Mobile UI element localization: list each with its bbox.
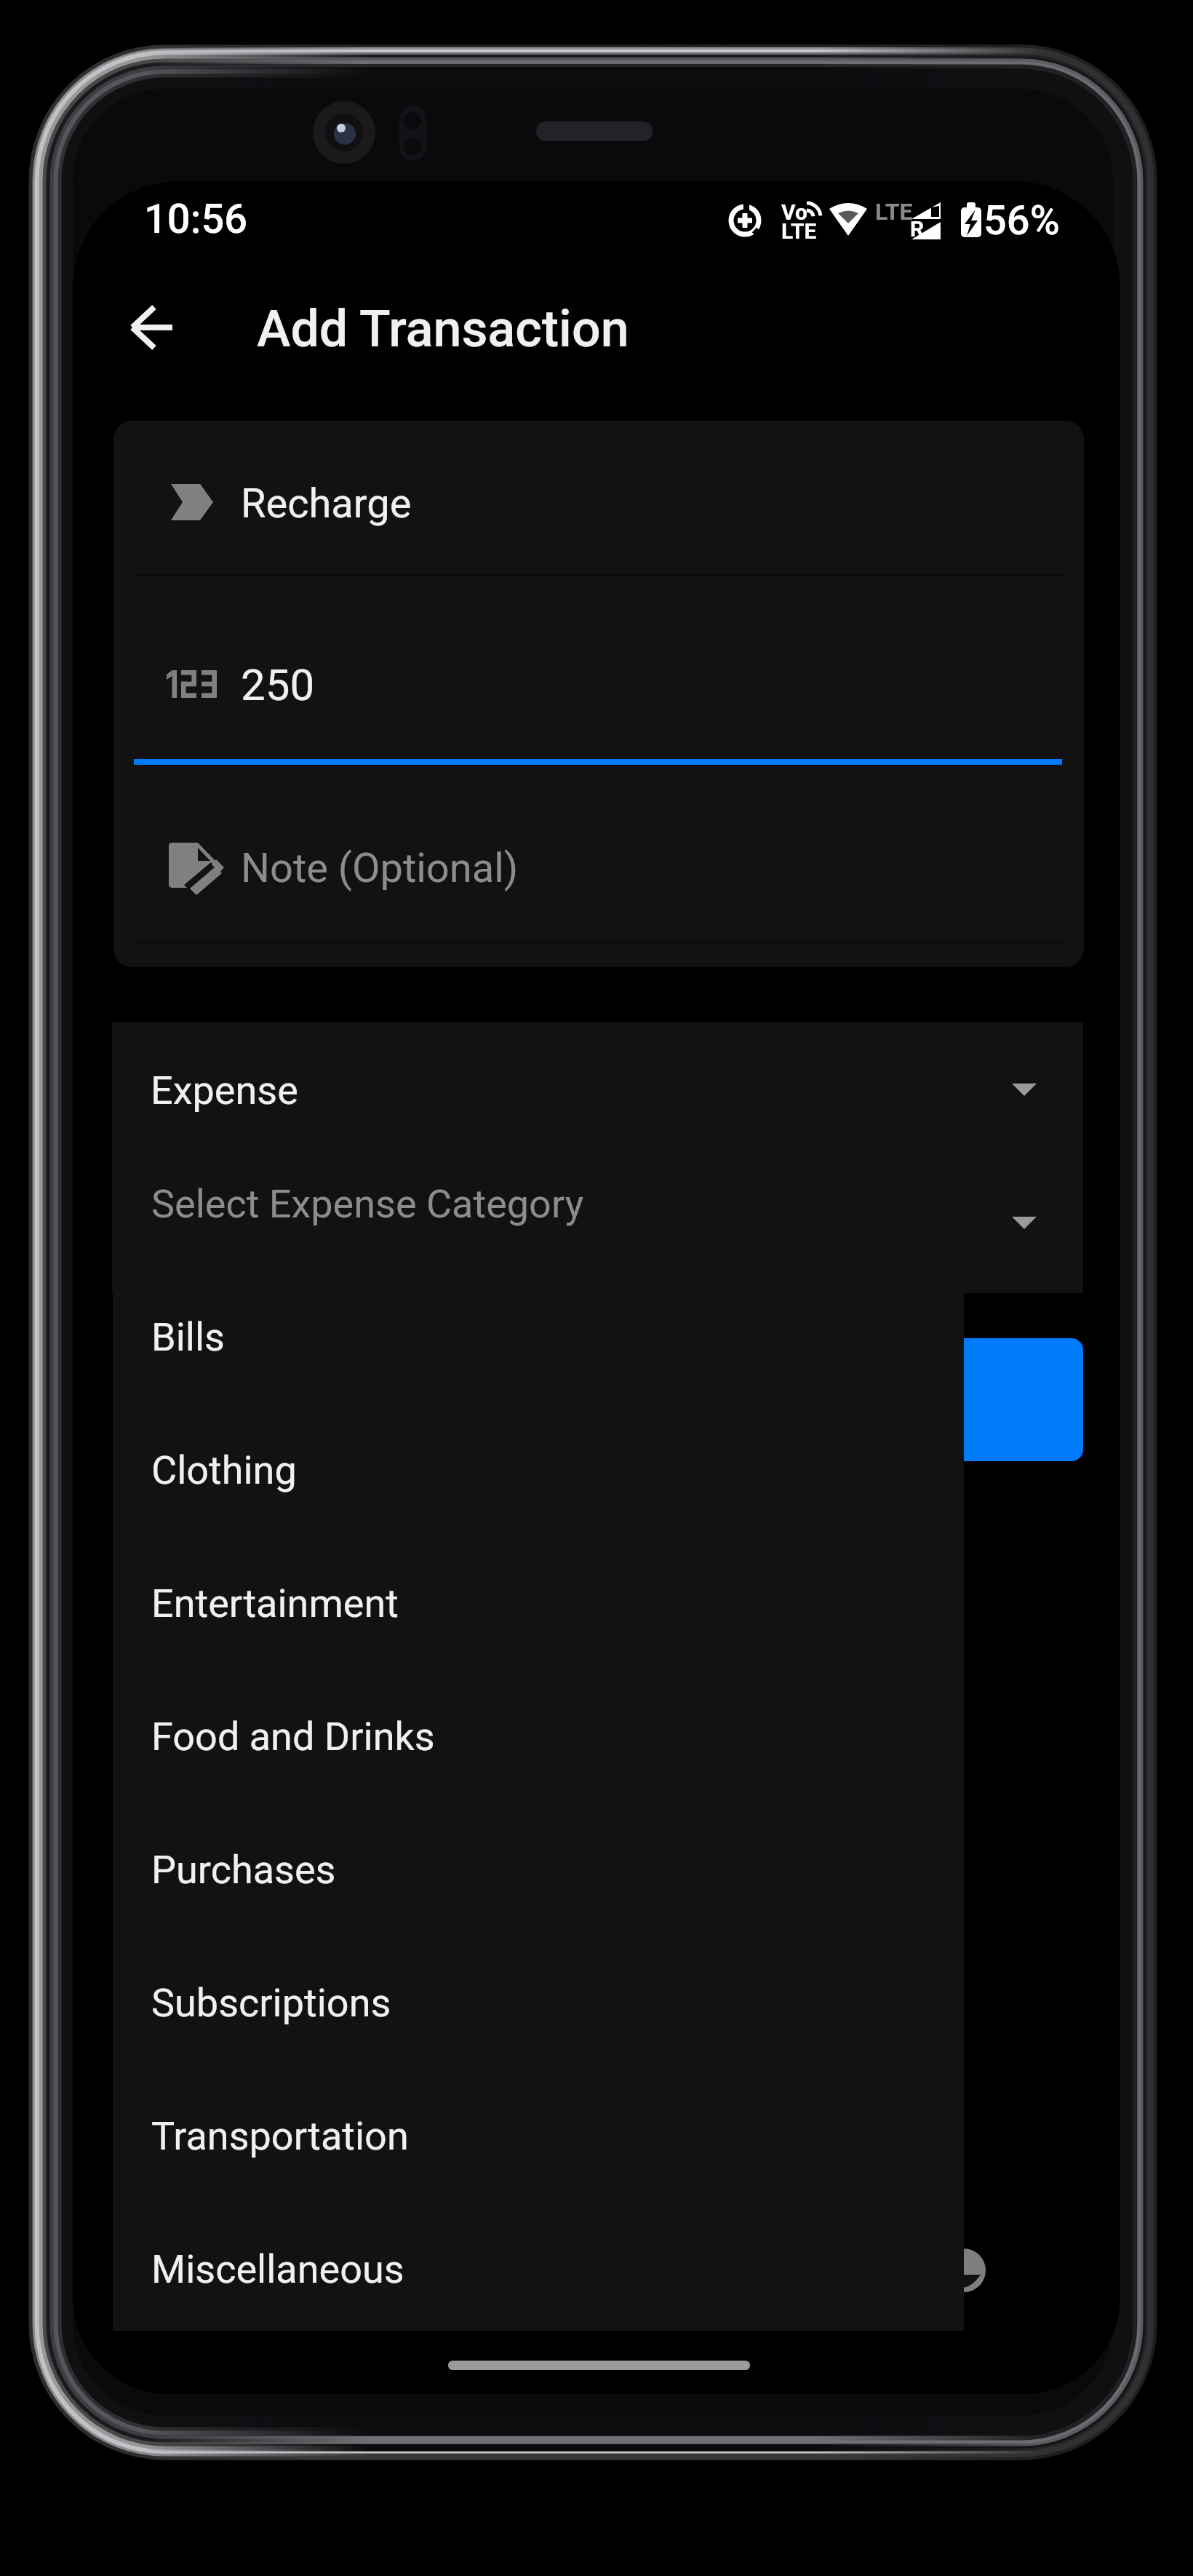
button[interactable]: Back	[116, 291, 188, 364]
staticText: Bills	[151, 1314, 225, 1360]
staticText: Add Transaction	[257, 299, 629, 359]
button[interactable]: Subscriptions	[113, 1933, 964, 2067]
staticText: R	[910, 216, 925, 242]
button[interactable]: Miscellaneous	[113, 2200, 964, 2333]
button[interactable]: Food and Drinks	[113, 1667, 964, 1800]
staticText: Purchases	[151, 1847, 336, 1893]
button[interactable]: Expense	[112, 1022, 1083, 1158]
staticText: Note (Optional)	[241, 844, 519, 892]
button[interactable]: Bills	[113, 1268, 964, 1401]
button[interactable]: Purchases	[113, 1800, 964, 1933]
button[interactable]: Note (Optional)	[113, 765, 1084, 942]
button[interactable]: Transportation	[113, 2067, 964, 2200]
staticText: 250	[241, 659, 315, 710]
staticText: Clothing	[151, 1447, 297, 1493]
staticText: Transportation	[151, 2113, 409, 2159]
staticText: Recharge	[241, 480, 412, 528]
staticText: 10:56	[144, 195, 248, 243]
button[interactable]: Entertainment	[113, 1534, 964, 1667]
staticText: 56%	[983, 196, 1060, 245]
button[interactable]: Select Expense Category	[112, 1159, 1083, 1293]
button[interactable]: 250	[113, 576, 1084, 760]
staticText: Miscellaneous	[151, 2246, 404, 2292]
staticText: LTE	[781, 218, 817, 244]
button[interactable]: Select Expense Category	[113, 1134, 964, 1268]
staticText: Subscriptions	[151, 1980, 391, 2026]
staticText: LTE	[875, 198, 913, 226]
staticText: Entertainment	[151, 1581, 399, 1626]
staticText: Select Expense Category	[151, 1204, 583, 1250]
button[interactable]: Save transaction	[866, 1338, 1083, 1461]
button[interactable]: Recharge	[113, 421, 1084, 574]
staticText: Vo	[781, 199, 807, 225]
button[interactable]: Clothing	[113, 1401, 964, 1534]
staticText: Select Expense Category	[151, 1181, 584, 1227]
staticText: Expense	[151, 1068, 298, 1113]
staticText: Food and Drinks	[151, 1714, 435, 1760]
